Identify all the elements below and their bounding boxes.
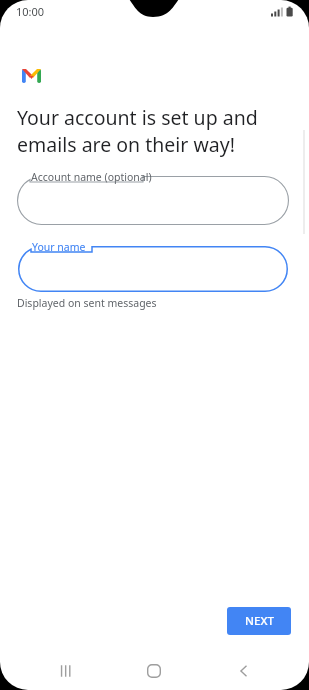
button[interactable]: Recent apps <box>44 652 88 690</box>
staticText: NEXT <box>245 613 274 629</box>
button[interactable]: Account name (optional) <box>17 166 289 225</box>
staticText: Account name (optional) <box>31 170 152 184</box>
staticText: Displayed on sent messages <box>17 296 157 310</box>
staticText: 10:00 <box>16 4 45 19</box>
button[interactable]: Home <box>132 652 176 690</box>
button[interactable]: NEXT <box>227 607 291 635</box>
staticText: Your name <box>32 240 86 254</box>
button[interactable]: Back <box>222 652 266 690</box>
staticText: Your account is set up and emails are on… <box>17 104 258 158</box>
button[interactable]: Your name <box>18 236 288 292</box>
